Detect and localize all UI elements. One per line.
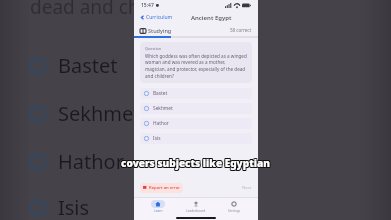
button[interactable]: Studying: [140, 27, 172, 34]
staticText: Sekhmet: [58, 100, 141, 127]
button[interactable]: Learn: [147, 199, 169, 214]
staticText: Bastet: [58, 52, 118, 79]
staticText: 15:47: [141, 2, 154, 9]
button[interactable]: Settings: [223, 199, 245, 214]
staticText: covers subjects like Egyptian: [122, 155, 271, 169]
staticText: covers subjects like Egyptian: [120, 155, 269, 169]
staticText: Ancient Egypt: [191, 14, 232, 22]
staticText: Isis: [153, 135, 161, 142]
staticText: covers subjects like Egyptian: [120, 156, 269, 170]
staticText: Sekhmet: [153, 105, 173, 112]
staticText: Bastet: [153, 90, 168, 97]
staticText: Isis: [58, 194, 90, 220]
staticText: 58 correct: [230, 27, 252, 33]
staticText: dead and chil: [30, 0, 150, 20]
staticText: Settings: [228, 209, 241, 213]
staticText: Next: [242, 185, 252, 191]
button[interactable]: Sekhmet: [140, 103, 252, 114]
staticText: Question: [145, 46, 162, 51]
staticText: Which goddess was often depicted as a wi…: [145, 53, 247, 79]
button[interactable]: Curriculum: [139, 14, 174, 21]
staticText: Learn: [154, 209, 163, 213]
staticText: Hathor: [58, 148, 124, 175]
staticText: Curriculum: [146, 14, 173, 21]
button[interactable]: Bastet: [140, 88, 252, 99]
button[interactable]: Hathor: [140, 118, 252, 129]
staticText: covers subjects like Egyptian: [121, 156, 270, 170]
staticText: Hathor: [153, 120, 169, 127]
button[interactable]: Report an error: [140, 183, 183, 193]
staticText: covers subjects like Egyptian: [121, 155, 270, 169]
staticText: covers subjects like Egyptian: [122, 157, 271, 171]
staticText: covers subjects like Egyptian: [122, 156, 271, 170]
button[interactable]: Isis: [140, 133, 252, 144]
staticText: covers subjects like Egyptian: [121, 157, 270, 171]
staticText: Leaderboard: [186, 209, 206, 213]
staticText: Studying: [148, 27, 172, 34]
staticText: covers subjects like Egyptian: [120, 157, 269, 171]
staticText: Report an error: [149, 185, 180, 191]
button[interactable]: Leaderboard: [182, 199, 210, 214]
